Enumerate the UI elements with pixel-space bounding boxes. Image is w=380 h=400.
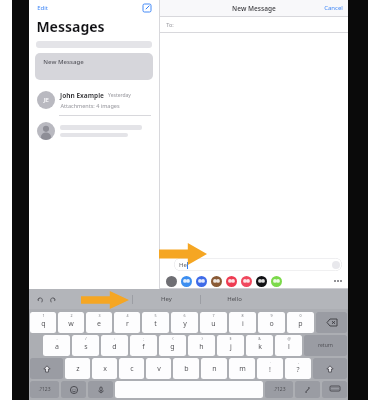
staticText: .	[270, 359, 271, 364]
button[interactable]: ;	[130, 335, 157, 356]
button[interactable]: n	[201, 358, 227, 379]
button[interactable]: ,	[285, 358, 311, 379]
staticText: t	[154, 319, 157, 329]
button[interactable]: Shift	[30, 358, 63, 379]
button[interactable]: .?123	[30, 381, 59, 398]
staticText: h	[199, 342, 204, 352]
button[interactable]: iMessage app	[211, 276, 222, 287]
staticText: To:	[166, 21, 174, 28]
button[interactable]: Hey	[133, 289, 200, 309]
staticText: New Message	[43, 58, 84, 66]
button[interactable]: Undo	[34, 293, 46, 305]
button[interactable]: iMessage app	[271, 276, 282, 287]
button[interactable]: c	[119, 358, 144, 379]
staticText: :	[114, 336, 115, 341]
button[interactable]: 7	[200, 312, 227, 333]
staticText: Cancel	[324, 4, 343, 12]
button[interactable]: Shift	[313, 358, 347, 379]
button[interactable]: iMessage app	[241, 276, 252, 287]
staticText: z	[76, 364, 80, 374]
button[interactable]: Compose new message	[141, 2, 153, 14]
staticText: 7	[212, 313, 215, 318]
staticText: 2	[70, 313, 73, 318]
button[interactable]: $	[217, 335, 244, 356]
button[interactable]: Handwriting	[295, 381, 320, 398]
button[interactable]: 6	[171, 312, 198, 333]
button[interactable]: Send	[332, 261, 340, 269]
staticText: v	[157, 364, 161, 374]
button[interactable]: iMessage app	[226, 276, 237, 287]
staticText: c	[130, 364, 134, 374]
button[interactable]: iMessage app	[166, 276, 177, 287]
button[interactable]: Emoji	[61, 381, 86, 398]
button[interactable]: .	[257, 358, 283, 379]
button[interactable]: Backspace	[316, 312, 347, 333]
button[interactable]: iMessage app	[181, 276, 192, 287]
button[interactable]: return	[304, 335, 347, 356]
button[interactable]: m	[229, 358, 255, 379]
staticText: 1	[42, 313, 45, 318]
staticText: .?123	[273, 386, 286, 393]
button[interactable]: 9	[258, 312, 285, 333]
button[interactable]: Dictation	[88, 381, 113, 398]
button[interactable]: Redo	[46, 293, 58, 305]
staticText: !	[269, 365, 271, 375]
staticText: return	[318, 342, 333, 349]
staticText: p	[298, 319, 303, 329]
button[interactable]: iMessage app	[196, 276, 207, 287]
button[interactable]: v	[146, 358, 171, 379]
staticText: Edit	[37, 4, 48, 12]
button[interactable]: JE	[29, 85, 159, 115]
button[interactable]: Hide keyboard	[322, 381, 347, 398]
button[interactable]: 4	[114, 312, 140, 333]
staticText: g	[170, 342, 175, 352]
button[interactable]: .?123	[265, 381, 293, 398]
staticText: 6	[183, 313, 186, 318]
button[interactable]: )	[188, 335, 215, 356]
staticText: 0	[299, 313, 302, 318]
button[interactable]: Cancel	[324, 4, 348, 12]
button[interactable]: Edit	[35, 2, 50, 14]
button[interactable]: "He"	[66, 289, 132, 309]
staticText: b	[184, 364, 189, 374]
button[interactable]: z	[65, 358, 90, 379]
staticText: JE	[43, 96, 49, 104]
button[interactable]: @	[275, 335, 302, 356]
button[interactable]: (	[159, 335, 186, 356]
button[interactable]: /	[72, 335, 99, 356]
button[interactable]: Hello	[201, 289, 268, 309]
button[interactable]: 1	[30, 312, 56, 333]
staticText: New Message	[232, 4, 276, 13]
button[interactable]: New Message	[35, 53, 153, 80]
staticText: ,	[298, 359, 299, 364]
staticText: u	[211, 319, 216, 329]
staticText: 4	[126, 313, 129, 318]
button[interactable]: 8	[229, 312, 256, 333]
button[interactable]: He	[174, 258, 342, 271]
staticText: q	[41, 319, 46, 329]
button[interactable]: :	[101, 335, 128, 356]
button[interactable]: x	[92, 358, 117, 379]
button[interactable]: 0	[287, 312, 314, 333]
staticText: x	[103, 364, 107, 374]
button[interactable]	[29, 116, 159, 146]
staticText: )	[201, 336, 203, 341]
button[interactable]: b	[173, 358, 199, 379]
button[interactable]: iMessage app	[256, 276, 267, 287]
button[interactable]: To:	[160, 17, 348, 32]
staticText: m	[239, 364, 246, 374]
button[interactable]: &	[246, 335, 273, 356]
button[interactable]: 2	[58, 312, 84, 333]
staticText: 5	[154, 313, 157, 318]
staticText: (	[172, 336, 174, 341]
button[interactable]: 3	[86, 312, 112, 333]
staticText: r	[126, 319, 129, 329]
staticText: w	[68, 319, 74, 329]
staticText: l	[288, 342, 290, 352]
button[interactable]: More apps	[332, 275, 344, 287]
button[interactable]: -	[43, 335, 70, 356]
staticText: Yesterday	[108, 92, 131, 99]
button[interactable]: 5	[142, 312, 169, 333]
